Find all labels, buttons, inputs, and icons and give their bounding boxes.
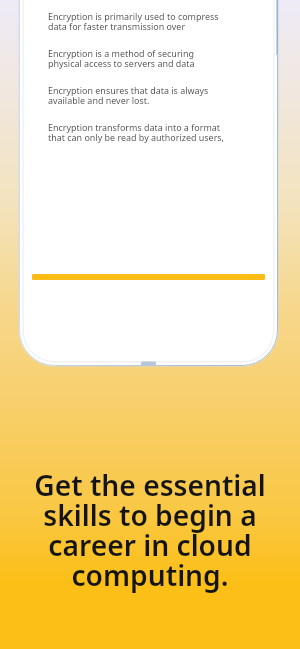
staticText: Encryption is primarily used to compress… xyxy=(48,10,225,33)
staticText: Get the essential skills to begin a care… xyxy=(12,466,288,594)
staticText: Encryption ensures that data is always a… xyxy=(48,84,225,107)
staticText: Encryption transforms data into a format… xyxy=(48,121,225,144)
staticText: Encryption is a method of securing physi… xyxy=(48,47,225,70)
other: Progress xyxy=(32,274,265,280)
